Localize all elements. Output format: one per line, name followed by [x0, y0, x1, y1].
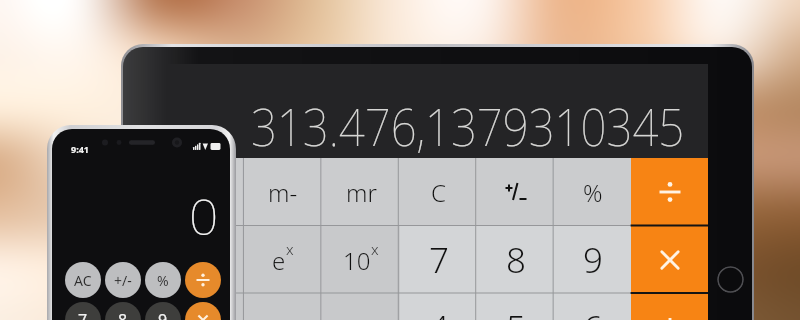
button[interactable]: Multiply [185, 302, 221, 320]
button[interactable]: mr [322, 158, 400, 226]
staticText: AC [74, 271, 92, 290]
staticText: 8 [118, 309, 128, 320]
staticText: 9:41 [71, 143, 89, 155]
staticText: sin [189, 312, 221, 320]
staticText: % [157, 271, 169, 290]
button[interactable]: 8 [477, 226, 554, 294]
button[interactable]: 9 [145, 302, 181, 320]
button[interactable]: 9 [554, 226, 631, 294]
staticText: 313.476,1379310345 [251, 90, 685, 161]
button[interactable]: m- [244, 158, 322, 226]
button[interactable]: 4 [400, 294, 477, 320]
staticText: 5 [506, 304, 526, 320]
button[interactable]: Plus [631, 294, 708, 320]
staticText: % [583, 176, 603, 209]
button[interactable]: 5 [477, 294, 554, 320]
button[interactable]: mc [166, 158, 244, 226]
button[interactable]: % [554, 158, 631, 226]
button[interactable]: Multiply [631, 226, 708, 294]
button[interactable]: e [244, 226, 322, 294]
button[interactable]: 10 [322, 226, 400, 294]
staticText: 0 [189, 183, 218, 250]
button[interactable]: Plus minus [477, 158, 554, 226]
button[interactable]: Home [717, 266, 744, 293]
button[interactable]: 7 [65, 302, 101, 320]
button[interactable]: % [145, 262, 181, 298]
staticText: x [286, 239, 294, 259]
staticText: 6 [583, 304, 603, 320]
button[interactable]: Divide [185, 262, 221, 298]
button[interactable]: sin [166, 294, 244, 320]
button[interactable]: Divide [631, 158, 708, 226]
button[interactable]: 7 [400, 226, 477, 294]
button[interactable]: 8 [105, 302, 141, 320]
button[interactable]: Plus [244, 294, 322, 320]
staticText: 9 [158, 309, 168, 320]
staticText: m- [268, 176, 298, 209]
staticText: 7 [78, 309, 88, 320]
button[interactable]: ln [166, 226, 244, 294]
staticText: x [371, 239, 379, 259]
staticText: 4 [429, 304, 449, 320]
staticText: +/- [114, 271, 132, 290]
staticText: C [431, 176, 446, 209]
staticText: e [272, 244, 286, 277]
staticText: mc [189, 176, 222, 209]
staticText: 8 [506, 236, 526, 284]
staticText: ln [195, 244, 215, 277]
button[interactable]: 6 [554, 294, 631, 320]
staticText: 7 [429, 236, 449, 284]
button[interactable]: +/- [105, 262, 141, 298]
staticText: mr [346, 176, 377, 209]
staticText: 10 [343, 244, 371, 277]
button[interactable]: Minus [322, 294, 400, 320]
button[interactable]: AC [65, 262, 101, 298]
staticText: 9 [583, 236, 603, 284]
button[interactable]: C [400, 158, 477, 226]
